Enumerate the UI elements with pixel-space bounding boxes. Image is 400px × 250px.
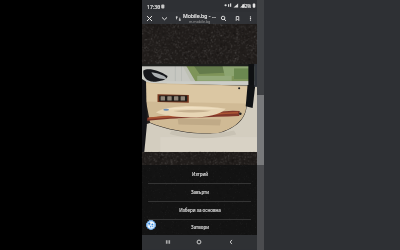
button[interactable]: Expand [158, 12, 170, 24]
button[interactable]: Завърти [142, 183, 257, 201]
button[interactable]: Recents [159, 235, 177, 249]
button[interactable]: Search [217, 12, 229, 24]
staticText: m.mobile.bg [189, 19, 211, 24]
button[interactable]: More options [244, 12, 256, 24]
button[interactable]: Избери за основна [142, 201, 257, 219]
button[interactable]: Bookmark [231, 12, 243, 24]
button[interactable]: Изтрий [142, 165, 257, 183]
button[interactable]: Back [222, 235, 240, 249]
staticText: 62% [242, 3, 252, 9]
staticText: Завърти [191, 189, 209, 195]
button[interactable]: Close [143, 12, 155, 24]
button[interactable]: Затвори [142, 219, 257, 235]
staticText: Избери за основна [179, 207, 221, 213]
staticText: Затвори [191, 224, 209, 230]
staticText: Mobile.bg - ... [183, 12, 216, 19]
button[interactable]: Site icon [146, 220, 156, 230]
staticText: Изтрий [192, 171, 208, 177]
button[interactable]: Home [190, 235, 208, 249]
staticText: 17:30 [147, 3, 161, 10]
button[interactable]: Translate [172, 12, 184, 24]
